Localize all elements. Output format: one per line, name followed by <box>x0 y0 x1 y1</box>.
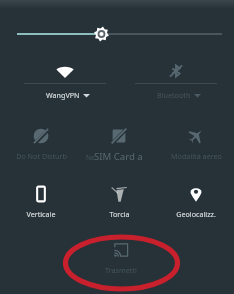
staticText: Ne <box>86 153 95 162</box>
staticText: Verticale <box>26 209 56 219</box>
button[interactable]: Modalità aereo <box>159 125 233 161</box>
staticText: Torcia <box>109 209 130 219</box>
staticText: Trasmetti <box>105 265 137 275</box>
button[interactable]: Wi-Fi <box>15 64 115 106</box>
button[interactable]: Ne <box>80 125 158 161</box>
button[interactable]: Brightness <box>0 0 234 48</box>
button[interactable]: Verticale <box>4 183 78 219</box>
button[interactable]: Trasmetti <box>84 239 158 275</box>
button[interactable]: Geolocalizz. <box>159 183 233 219</box>
button[interactable]: Bluetooth <box>126 64 226 106</box>
staticText: Modalità aereo <box>171 151 222 161</box>
staticText: SIM Card a <box>94 150 143 160</box>
button[interactable]: Torcia <box>82 183 156 219</box>
staticText: Do Not Disturb <box>16 151 67 161</box>
staticText: Bluetooth <box>157 90 191 100</box>
staticText: Geolocalizz. <box>176 209 216 219</box>
staticText: WangVPN <box>46 90 80 100</box>
button[interactable]: Do Not Disturb <box>4 125 78 161</box>
